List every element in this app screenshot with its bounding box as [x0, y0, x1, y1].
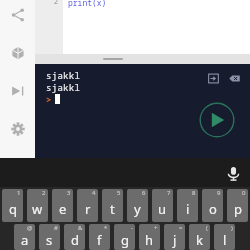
staticText: 6: [142, 189, 146, 197]
button[interactable]: 5: [102, 189, 123, 222]
staticText: #: [54, 224, 58, 232]
button[interactable]: 8: [177, 189, 198, 222]
staticText: ): [231, 224, 233, 232]
button[interactable]: Backspace: [227, 71, 241, 85]
button[interactable]: =: [164, 224, 185, 250]
staticText: t: [110, 200, 115, 218]
button[interactable]: 3: [52, 189, 73, 222]
staticText: 4: [92, 189, 96, 197]
button[interactable]: 0: [227, 189, 248, 222]
staticText: 1: [17, 189, 21, 197]
button[interactable]: Settings: [4, 115, 32, 143]
staticText: q: [9, 200, 17, 218]
button[interactable]: 2: [27, 189, 48, 222]
staticText: 7: [167, 189, 171, 197]
staticText: y: [134, 200, 141, 218]
staticText: 5: [117, 189, 121, 197]
button[interactable]: &: [64, 224, 85, 250]
button[interactable]: Send input: [206, 71, 220, 85]
button[interactable]: Packages: [4, 39, 32, 67]
staticText: -: [131, 224, 133, 232]
button[interactable]: 7: [152, 189, 173, 222]
staticText: 2: [35, 0, 58, 7]
staticText: j: [173, 231, 177, 249]
button[interactable]: Voice input: [223, 163, 243, 183]
button[interactable]: ): [214, 224, 235, 250]
staticText: @: [27, 224, 33, 232]
button[interactable]: -: [114, 224, 135, 250]
staticText: 3: [67, 189, 71, 197]
staticText: r: [85, 200, 91, 218]
staticText: &: [78, 224, 83, 232]
staticText: 9: [217, 189, 221, 197]
button[interactable]: 4: [77, 189, 98, 222]
button[interactable]: 6: [127, 189, 148, 222]
staticText: p: [234, 200, 242, 218]
staticText: >: [46, 93, 52, 105]
staticText: sjakkl: [46, 81, 81, 93]
staticText: 2: [42, 189, 46, 197]
button[interactable]: 9: [202, 189, 223, 222]
staticText: =: [179, 224, 183, 232]
staticText: w: [32, 200, 43, 218]
staticText: d: [71, 231, 79, 249]
staticText: +: [154, 224, 158, 232]
staticText: e: [59, 200, 67, 218]
staticText: 0: [242, 189, 246, 197]
button[interactable]: +: [139, 224, 160, 250]
staticText: o: [209, 200, 217, 218]
staticText: 8: [192, 189, 196, 197]
button[interactable]: Run: [199, 102, 235, 138]
button[interactable]: Step over: [4, 77, 32, 105]
button[interactable]: Share: [4, 1, 32, 29]
button[interactable]: (: [189, 224, 210, 250]
staticText: s: [46, 231, 53, 249]
button[interactable]: #: [39, 224, 60, 250]
staticText: f: [97, 231, 102, 249]
staticText: k: [196, 231, 203, 249]
staticText: *: [104, 224, 108, 232]
staticText: l: [223, 231, 227, 249]
staticText: (: [206, 224, 208, 232]
button[interactable]: 1: [2, 189, 23, 222]
staticText: u: [158, 200, 167, 218]
staticText: a: [21, 231, 29, 249]
staticText: print(x): [68, 0, 107, 8]
staticText: i: [186, 200, 190, 218]
staticText: sjakkl: [46, 69, 81, 81]
button[interactable]: *: [89, 224, 110, 250]
staticText: h: [145, 231, 154, 249]
staticText: g: [121, 231, 129, 249]
button[interactable]: @: [14, 224, 35, 250]
